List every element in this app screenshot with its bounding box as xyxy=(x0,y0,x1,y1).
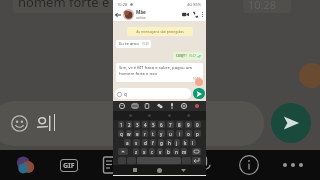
staticText: 1 xyxy=(120,122,123,128)
button[interactable]: GIF xyxy=(52,150,86,180)
staticText: r xyxy=(144,131,146,137)
staticText: e xyxy=(136,131,139,137)
button[interactable]: Send xyxy=(271,103,311,143)
staticText: k xyxy=(184,140,187,146)
staticText: z xyxy=(135,149,138,155)
staticText: q xyxy=(124,91,127,97)
staticText: t xyxy=(152,131,154,137)
staticText: 3 xyxy=(136,122,139,128)
staticText: 6 xyxy=(160,122,163,128)
staticText: w xyxy=(127,131,131,137)
staticText: 5 xyxy=(152,122,155,128)
staticText: o xyxy=(187,131,190,137)
staticText: s xyxy=(135,140,138,146)
staticText: 10:26 xyxy=(142,42,149,46)
staticText: OBJ!!! xyxy=(176,53,187,59)
staticText: m xyxy=(182,149,187,155)
staticText: v xyxy=(159,149,162,155)
staticText: 9 xyxy=(187,122,190,128)
staticText: c xyxy=(151,149,154,155)
button[interactable]: More xyxy=(276,150,310,180)
staticText: 10:28 xyxy=(117,2,128,7)
staticText: 10:27 xyxy=(189,54,196,58)
staticText: Sim, vc é MT fraca e sobre, pagou um hom… xyxy=(119,65,200,77)
staticText: a xyxy=(126,140,129,146)
staticText: l xyxy=(192,140,194,146)
staticText: As mensagens são protegidas xyxy=(136,29,184,34)
staticText: f xyxy=(152,140,154,146)
staticText: n xyxy=(175,149,178,155)
button[interactable]: Gallery xyxy=(93,150,127,180)
staticText: q xyxy=(120,131,123,137)
staticText: j xyxy=(176,140,178,146)
staticText: p xyxy=(196,131,199,137)
staticText: g xyxy=(160,140,163,146)
staticText: homem forte e i xyxy=(18,0,117,11)
staticText: d xyxy=(144,140,147,146)
button[interactable]: Emoji xyxy=(0,101,264,146)
staticText: 4G 85% xyxy=(187,2,202,7)
staticText: u xyxy=(169,131,172,137)
staticText: 4 xyxy=(144,122,147,128)
staticText: 7 xyxy=(169,122,172,128)
staticText: 8 xyxy=(178,122,181,128)
staticText: 10:27 xyxy=(193,77,200,81)
staticText: h xyxy=(168,140,171,146)
button[interactable]: Assistant xyxy=(8,150,42,180)
button[interactable]: Voice xyxy=(187,150,221,180)
staticText: 의 xyxy=(36,113,53,134)
staticText: 2 xyxy=(128,122,131,128)
staticText: i xyxy=(179,131,181,137)
button[interactable]: Info xyxy=(232,150,266,180)
other: Emoji xyxy=(11,115,28,132)
staticText: Mãe xyxy=(136,9,146,15)
staticText: 10:28 xyxy=(248,0,277,12)
staticText: online xyxy=(136,15,146,20)
staticText: b xyxy=(167,149,170,155)
staticText: y xyxy=(160,131,163,137)
staticText: x xyxy=(143,149,146,155)
staticText: 0 xyxy=(196,122,199,128)
staticText: GIF xyxy=(63,161,75,171)
staticText: Eu te amo xyxy=(119,41,139,47)
